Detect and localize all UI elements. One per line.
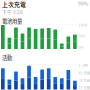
staticText: 電池用量 <box>2 17 22 25</box>
staticText: 30 分鐘 <box>78 78 89 83</box>
staticText: 活動 <box>2 53 12 61</box>
staticText: 1 小時 <box>78 63 87 68</box>
staticText: 15 分鐘 <box>78 86 89 90</box>
staticText: 45 分鐘 <box>78 71 89 75</box>
staticText: 下午 3:26 <box>2 8 23 15</box>
button[interactable]: 上次充電 <box>0 0 88 12</box>
staticText: 98% <box>78 0 88 7</box>
staticText: 100% <box>78 23 87 27</box>
staticText: 0% <box>78 45 83 50</box>
staticText: 50% <box>78 34 85 38</box>
staticText: 上次充電 <box>2 0 26 8</box>
